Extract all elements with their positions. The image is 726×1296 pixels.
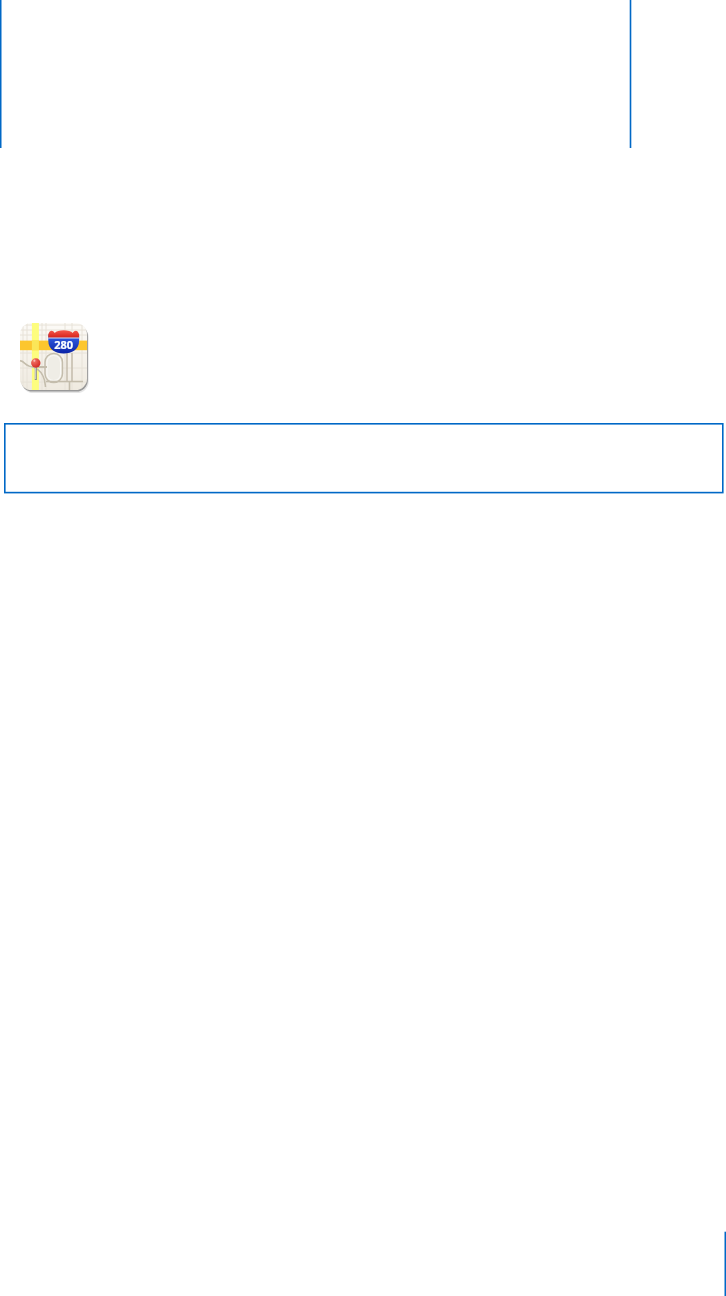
button[interactable]: Maps xyxy=(20,323,87,392)
button[interactable]: Input field xyxy=(4,423,724,493)
